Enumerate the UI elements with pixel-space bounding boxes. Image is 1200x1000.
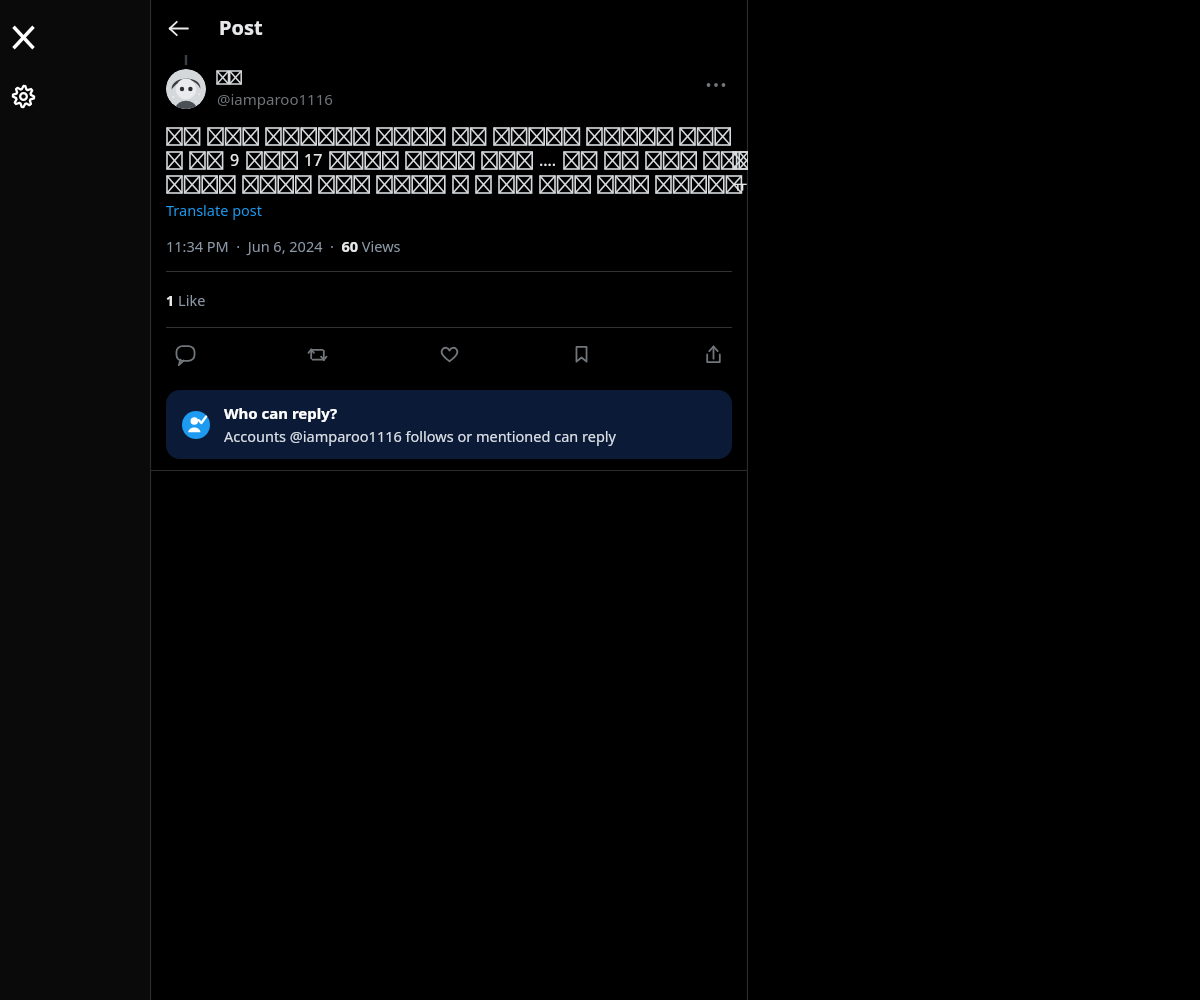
staticText: 17 bbox=[304, 149, 323, 171]
button[interactable]: 11:34 PM · Jun 6, 2024 · 60 Views bbox=[166, 236, 401, 256]
button[interactable]: Reply bbox=[166, 335, 204, 373]
staticText: 11:34 PM · Jun 6, 2024 · 60 Views bbox=[166, 236, 401, 256]
button[interactable]: Like bbox=[430, 335, 468, 373]
staticText: 1 Like bbox=[166, 290, 206, 310]
staticText: 9 bbox=[230, 149, 240, 171]
button[interactable]: Profile picture bbox=[166, 69, 206, 109]
staticText: @iamparoo1116 bbox=[217, 89, 333, 109]
button[interactable]: Bookmark bbox=[562, 335, 600, 373]
staticText: Translate post bbox=[166, 200, 263, 220]
button[interactable]: Settings bbox=[0, 73, 46, 119]
button[interactable]: Who can reply? bbox=[166, 390, 732, 459]
staticText: Who can reply? bbox=[224, 403, 338, 423]
button[interactable]: More options bbox=[700, 69, 732, 101]
button[interactable]: 1 Like bbox=[166, 272, 732, 327]
button[interactable]: X home bbox=[0, 14, 46, 60]
staticText: Accounts @iamparoo1116 follows or mentio… bbox=[224, 426, 616, 446]
button[interactable]: Back bbox=[159, 9, 197, 47]
button[interactable]: Repost bbox=[298, 335, 336, 373]
staticText: .... bbox=[539, 149, 557, 171]
button[interactable]: Translate post bbox=[166, 200, 263, 220]
staticText: Post bbox=[219, 14, 263, 41]
button[interactable]: @iamparoo1116 bbox=[217, 69, 700, 109]
button[interactable]: Share bbox=[694, 335, 732, 373]
